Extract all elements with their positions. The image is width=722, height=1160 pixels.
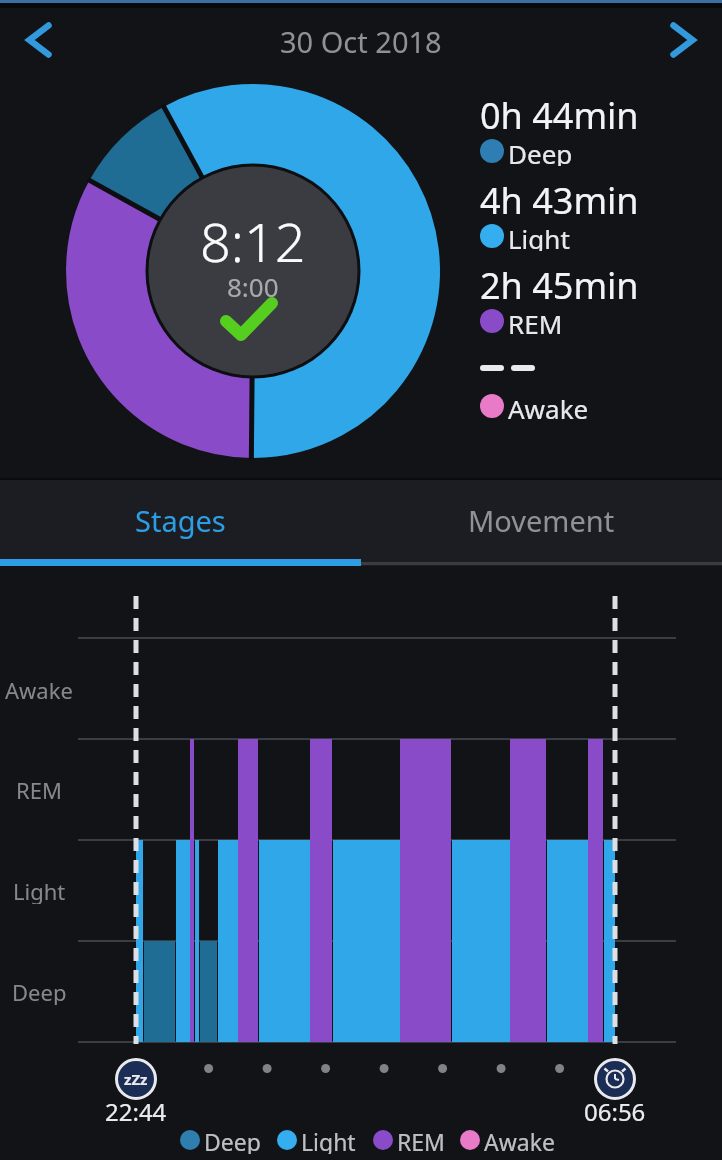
- staticText: Light: [301, 1126, 356, 1154]
- staticText: Light: [13, 876, 66, 904]
- staticText: Deep: [204, 1126, 261, 1154]
- staticText: Deep: [12, 977, 67, 1005]
- staticText: Stages: [135, 501, 226, 540]
- staticText: Awake: [484, 1126, 555, 1154]
- button[interactable]: [14, 15, 64, 65]
- staticText: Awake: [5, 675, 73, 703]
- staticText: 2h 45min: [480, 261, 639, 305]
- staticText: 30 Oct 2018: [280, 22, 442, 58]
- button[interactable]: [593, 1057, 637, 1101]
- button[interactable]: [658, 15, 708, 65]
- button[interactable]: zZz: [116, 1066, 156, 1092]
- staticText: 4h 43min: [480, 176, 639, 220]
- staticText: Light: [508, 221, 570, 251]
- staticText: 22:44: [105, 1095, 167, 1123]
- staticText: zZz: [124, 1069, 148, 1089]
- staticText: Awake: [508, 391, 589, 421]
- button[interactable]: Movement: [361, 478, 722, 562]
- staticText: Movement: [468, 501, 615, 540]
- staticText: REM: [397, 1126, 445, 1154]
- staticText: 06:56: [584, 1095, 646, 1123]
- staticText: Deep: [508, 136, 573, 166]
- button[interactable]: Stages: [0, 478, 361, 562]
- staticText: 8:00: [227, 269, 279, 299]
- staticText: REM: [508, 306, 563, 336]
- staticText: 0h 44min: [480, 91, 639, 135]
- staticText: 8:12: [200, 204, 306, 268]
- staticText: REM: [16, 775, 62, 803]
